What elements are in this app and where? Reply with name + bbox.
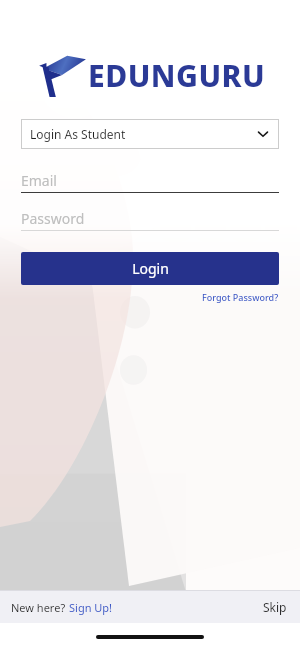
staticText: Email: [21, 171, 57, 190]
staticText: EDUNGURU: [88, 55, 266, 96]
other: Home indicator: [96, 635, 204, 639]
staticText: Forgot Password?: [202, 291, 279, 303]
staticText: Sign Up!: [69, 600, 113, 615]
button[interactable]: Forgot Password?: [202, 291, 279, 303]
button[interactable]: Skip: [261, 599, 289, 615]
button[interactable]: Login As Student: [21, 119, 279, 149]
button[interactable]: Email: [21, 169, 279, 193]
staticText: Skip: [263, 599, 287, 615]
staticText: New here?: [11, 600, 69, 615]
staticText: Login: [132, 259, 169, 278]
button[interactable]: New here?: [11, 600, 113, 615]
button[interactable]: Login: [21, 252, 279, 285]
staticText: Login As Student: [30, 126, 256, 142]
button[interactable]: Password: [21, 207, 279, 231]
staticText: Password: [21, 209, 85, 228]
